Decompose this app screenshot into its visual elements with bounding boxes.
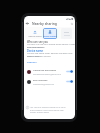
button[interactable]: Toggle visibility — [66, 79, 73, 84]
staticText: quick settings. Learn more about how — [30, 109, 64, 112]
button[interactable]: Help — [69, 21, 74, 26]
staticText: Contacts can see your device when nearby… — [27, 43, 75, 48]
staticText: You can turn nearby sharing on or off in — [30, 106, 66, 109]
staticText: rinawahidah@gmail.com — [33, 83, 54, 85]
staticText: Rina Wahidah — [33, 79, 48, 82]
staticText: Nanda Eka Darmawan — [33, 69, 57, 72]
staticText: Device name — [27, 49, 43, 53]
button[interactable]: Toggle visibility — [66, 69, 73, 74]
staticText: Nearby sharing — [32, 21, 57, 26]
staticText: content with you nearby — [27, 55, 51, 58]
staticText: Device visible — [28, 35, 42, 38]
staticText: Contacts — [27, 61, 37, 64]
button[interactable]: More options — [61, 28, 72, 39]
button[interactable]: Device hidden — [43, 28, 57, 39]
staticText: Device hidden — [43, 35, 57, 38]
button[interactable]: Back — [25, 21, 30, 26]
staticText: Choose the name other devices see when t… — [27, 52, 75, 57]
staticText: nearby sharing works — [30, 111, 50, 114]
button[interactable]: Device visible — [28, 28, 42, 39]
staticText: sharing turned on — [27, 46, 45, 49]
button[interactable]: Nanda Eka Darmawan — [24, 67, 75, 76]
button[interactable]: Rina Wahidah — [24, 77, 75, 86]
staticText: Who can see you — [27, 40, 48, 44]
staticText: nandaekadarmawan@gmail.com — [33, 73, 61, 75]
